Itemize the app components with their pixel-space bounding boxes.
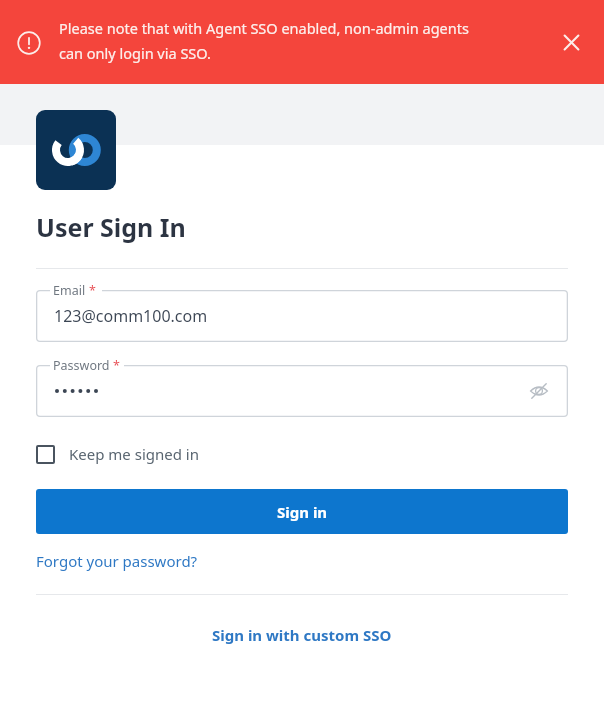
button[interactable]: Show password [524,376,554,406]
button[interactable]: Forgot your password? [36,548,198,574]
staticText: Sign in [277,502,328,522]
other: Warning [17,31,41,55]
button[interactable]: Close [552,23,590,61]
staticText: Forgot your password? [36,551,198,571]
staticText: Please note that with Agent SSO enabled,… [59,18,469,38]
other: Comm100 logo [36,110,116,190]
button[interactable]: Sign in [36,489,568,534]
staticText: * [89,282,96,299]
staticText: Keep me signed in [69,444,199,464]
staticText: * [113,357,120,374]
button[interactable]: Email [36,290,568,342]
staticText: 123@comm100.com [54,305,208,327]
staticText: Sign in with custom SSO [212,625,392,645]
staticText: Password [53,357,110,374]
staticText: can only login via SSO. [59,43,211,63]
staticText: Email [53,282,86,299]
button[interactable]: Sign in with custom SSO [204,621,400,649]
button[interactable]: Password [36,365,568,417]
button[interactable]: Keep me signed in [34,438,201,470]
staticText: User Sign In [36,210,186,244]
